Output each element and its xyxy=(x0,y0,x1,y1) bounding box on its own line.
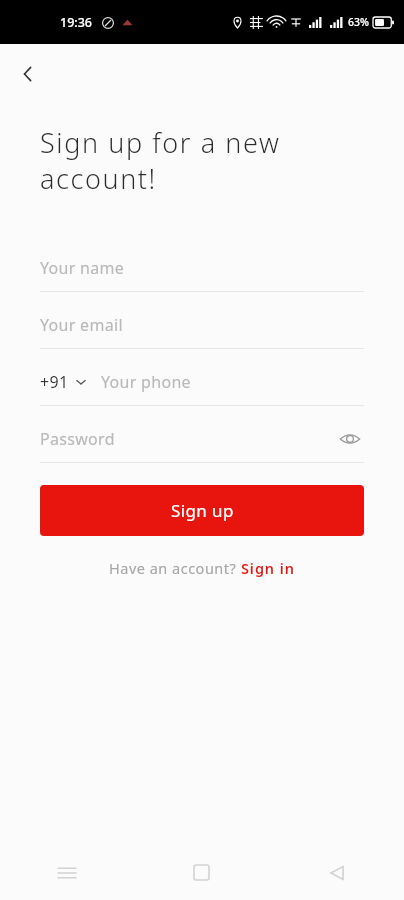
button[interactable]: Sign in xyxy=(241,558,295,578)
button[interactable]: Back xyxy=(6,52,50,96)
staticText: Your email xyxy=(40,314,123,336)
staticText: 19:36 xyxy=(60,14,93,31)
staticText: Password xyxy=(40,428,336,450)
button[interactable]: +91 xyxy=(40,359,364,406)
staticText: Sign up xyxy=(171,499,234,522)
staticText: Sign in xyxy=(241,558,295,578)
staticText: +91 xyxy=(40,371,69,393)
staticText: Your phone xyxy=(101,371,191,393)
button[interactable]: Show password xyxy=(336,425,364,453)
button[interactable]: Password xyxy=(40,416,364,462)
staticText: Your name xyxy=(40,257,125,279)
button[interactable]: Sign up xyxy=(40,485,364,536)
button[interactable]: Back xyxy=(269,845,404,900)
staticText: Have an account? xyxy=(109,558,241,578)
staticText: Sign up for a new account! xyxy=(40,124,364,197)
button[interactable]: Recents xyxy=(0,845,134,900)
staticText: 63% xyxy=(348,15,369,29)
button[interactable]: Home xyxy=(134,845,269,900)
button[interactable]: Your email xyxy=(40,302,364,359)
button[interactable]: Your name xyxy=(40,245,364,302)
